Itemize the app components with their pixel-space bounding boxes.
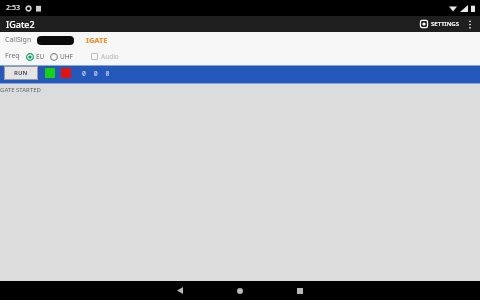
button[interactable]: Audio <box>91 52 119 61</box>
button[interactable]: Recent apps <box>285 281 315 300</box>
button[interactable]: UHF <box>50 52 73 61</box>
staticText: Freq <box>5 51 20 61</box>
button[interactable]: EU <box>26 52 45 61</box>
staticText: SETTINGS <box>431 20 459 28</box>
staticText: Audio <box>101 52 119 61</box>
button[interactable]: SETTINGS <box>416 18 463 30</box>
button[interactable]: RUN <box>4 66 38 80</box>
button[interactable]: Call sign field <box>37 36 74 45</box>
button[interactable]: More options <box>463 16 477 32</box>
staticText: 2:53 <box>6 3 20 13</box>
staticText: RUN <box>14 69 28 77</box>
button[interactable]: Back <box>165 281 195 300</box>
button[interactable]: Home <box>225 281 255 300</box>
staticText: UHF <box>60 52 73 61</box>
staticText: IGATE STARTED <box>0 86 41 94</box>
staticText: IGATE <box>86 35 108 45</box>
staticText: IGate2 <box>6 18 35 30</box>
staticText: CallSign <box>5 35 32 45</box>
staticText: EU <box>36 52 45 61</box>
staticText: 0 0 0 <box>82 69 110 78</box>
